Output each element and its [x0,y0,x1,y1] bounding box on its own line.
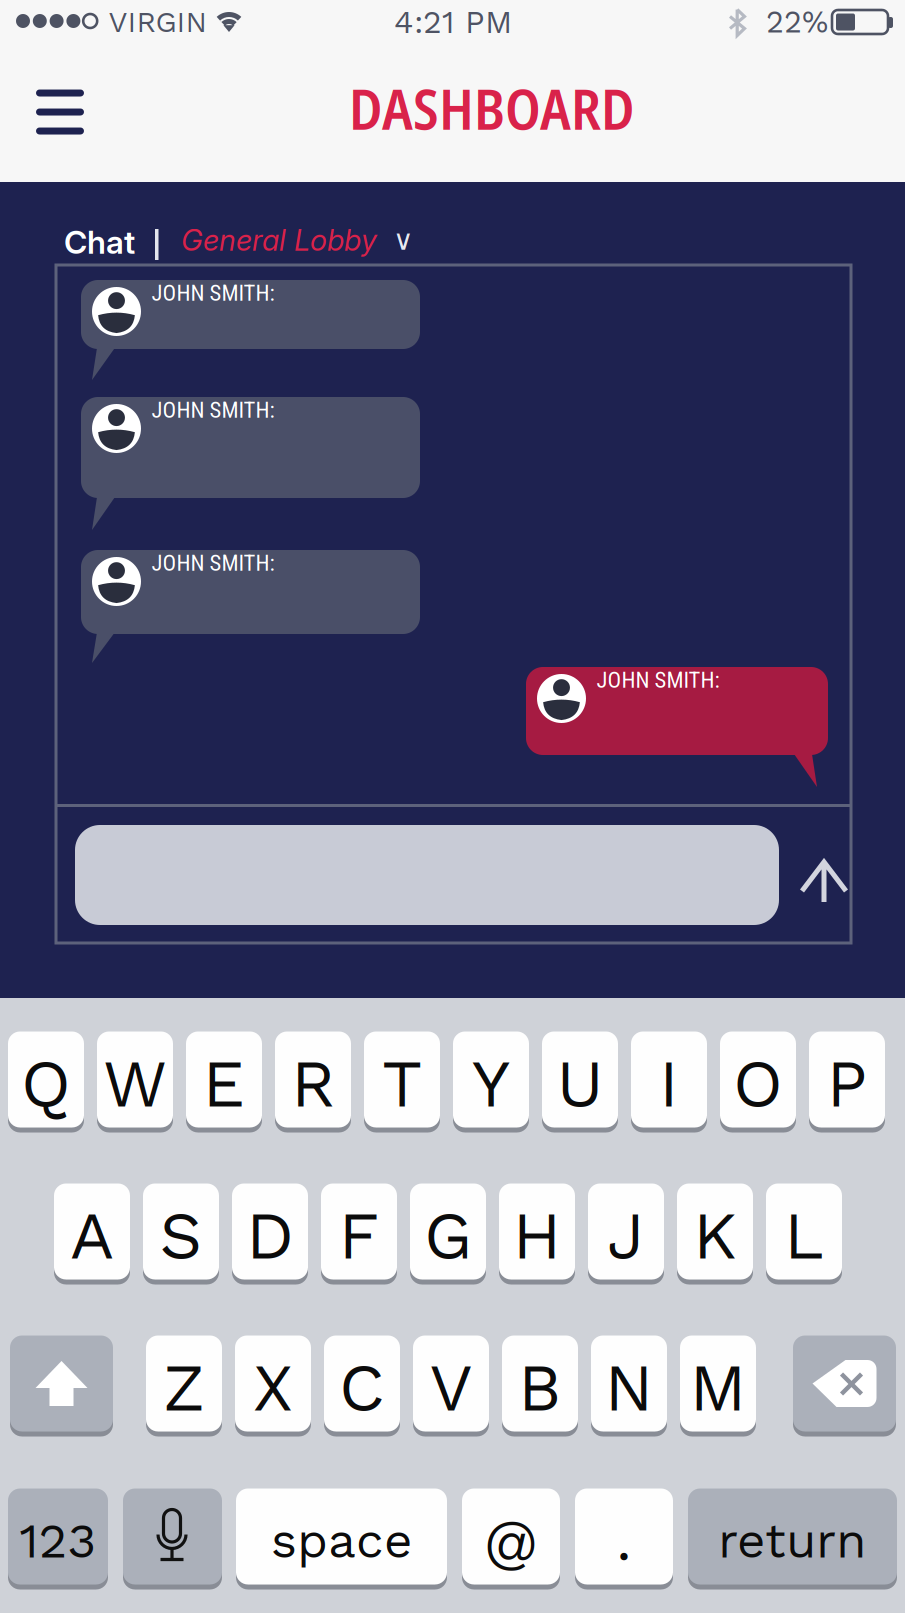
staticText: Z [163,1348,205,1427]
button[interactable]: U [542,1029,618,1130]
staticText: N [604,1348,653,1427]
staticText: H [512,1196,561,1275]
staticText: G [424,1196,472,1275]
staticText: D [246,1196,294,1275]
staticText: A [70,1196,114,1275]
staticText: T [382,1044,422,1123]
button[interactable]: space [236,1486,447,1587]
button[interactable]: return [688,1486,897,1587]
button[interactable]: K [677,1181,753,1282]
button[interactable]: N [591,1333,667,1434]
staticText: R [291,1044,335,1123]
button[interactable]: W [97,1029,173,1130]
staticText: Y [472,1044,510,1123]
staticText: return [718,1512,867,1569]
button[interactable]: V [413,1333,489,1434]
button[interactable]: Send [792,833,858,933]
button[interactable]: @ [462,1486,560,1587]
staticText: P [826,1044,867,1123]
staticText: 123 [19,1512,96,1569]
button[interactable]: F [321,1181,397,1282]
button[interactable]: . [575,1486,673,1587]
button[interactable]: Q [8,1029,84,1130]
button[interactable]: Y [453,1029,529,1130]
staticText: . [616,1508,631,1573]
staticText: O [733,1044,783,1123]
button[interactable]: E [186,1029,262,1130]
staticText: JOHN SMITH: [151,397,274,423]
staticText: K [693,1196,737,1275]
staticText: E [202,1044,245,1123]
staticText: F [338,1196,379,1275]
staticText: JOHN SMITH: [596,667,719,693]
staticText: JOHN SMITH: [151,280,274,306]
button[interactable] [123,1486,222,1587]
button[interactable]: O [720,1029,796,1130]
button[interactable]: M [680,1333,756,1434]
button[interactable]: P [809,1029,885,1130]
button[interactable]: G [410,1181,486,1282]
staticText: Chat [64,223,135,261]
button[interactable]: 123 [8,1486,108,1587]
staticText: V [429,1348,472,1427]
staticText: J [607,1196,645,1275]
button[interactable]: C [324,1333,400,1434]
staticText: W [103,1044,167,1123]
staticText: @ [484,1508,538,1573]
button[interactable]: B [502,1333,578,1434]
button[interactable]: H [499,1181,575,1282]
staticText: Q [21,1044,71,1123]
button[interactable]: Chat [64,220,144,264]
button[interactable]: S [143,1181,219,1282]
staticText: U [556,1044,603,1123]
staticText: I [659,1044,679,1123]
staticText: M [689,1348,746,1427]
button[interactable]: Menu [12,68,108,156]
button[interactable]: D [232,1181,308,1282]
button[interactable]: T [364,1029,440,1130]
button[interactable]: L [766,1181,842,1282]
button[interactable] [793,1333,896,1434]
button[interactable]: X [235,1333,311,1434]
button[interactable]: General Lobby [181,218,481,262]
staticText: DASHBOARD [349,70,635,146]
button[interactable]: A [54,1181,130,1282]
staticText: 22% [766,4,828,40]
staticText: JOHN SMITH: [151,550,274,576]
button[interactable]: I [631,1029,707,1130]
staticText: S [159,1196,202,1275]
button[interactable]: J [588,1181,664,1282]
staticText: C [339,1348,385,1427]
staticText: space [271,1512,412,1569]
staticText: General Lobby [181,222,377,258]
button[interactable] [10,1333,113,1434]
staticText: 4:21 PM [394,3,512,41]
button[interactable]: Z [146,1333,222,1434]
staticText: VIRGIN [108,5,207,39]
staticText: L [784,1196,824,1275]
staticText: X [253,1348,293,1427]
button[interactable]: R [275,1029,351,1130]
staticText: B [518,1348,562,1427]
staticText: ∨ [393,224,413,256]
